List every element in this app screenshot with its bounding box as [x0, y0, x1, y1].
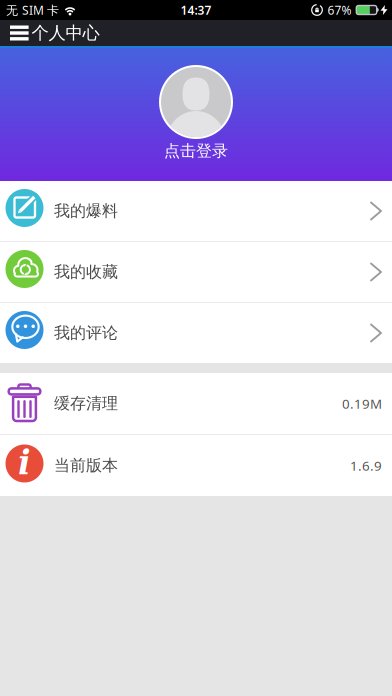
staticText: 1.6.9	[350, 457, 382, 474]
button[interactable]: 缓存清理	[0, 373, 392, 434]
staticText: 我的收藏	[54, 262, 118, 282]
staticText: 我的爆料	[54, 201, 118, 221]
staticText: 无 SIM 卡	[6, 2, 59, 18]
button[interactable]: 点击登录	[159, 48, 233, 181]
staticText: i	[18, 443, 31, 482]
button[interactable]: 我的收藏	[0, 242, 392, 302]
button[interactable]: 菜单	[0, 25, 32, 40]
staticText: 点击登录	[164, 141, 228, 161]
button[interactable]: 我的评论	[0, 303, 392, 363]
staticText: 67%	[327, 2, 351, 18]
staticText: 当前版本	[54, 456, 118, 475]
button[interactable]: i	[0, 435, 392, 496]
staticText: 我的评论	[54, 323, 118, 343]
staticText: 0.19M	[342, 395, 382, 412]
staticText: 个人中心	[32, 22, 100, 44]
staticText: 缓存清理	[54, 394, 118, 413]
staticText: 14:37	[180, 2, 211, 18]
button[interactable]: 我的爆料	[0, 181, 392, 241]
